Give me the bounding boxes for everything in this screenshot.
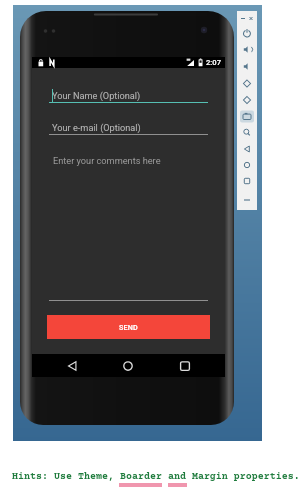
button[interactable]: Your e-mail (Optional)	[49, 120, 208, 136]
button[interactable]: Your Name (Optional)	[49, 88, 208, 104]
button[interactable]: SEND	[47, 315, 210, 339]
staticText: 2:07	[206, 58, 221, 67]
staticText: Hints: Use Theme, Boarder and Margin pro…	[12, 471, 300, 482]
staticText: Enter your comments here	[53, 155, 161, 166]
staticText: Your e-mail (Optional)	[52, 122, 141, 133]
staticText: SEND	[119, 323, 139, 331]
button[interactable]: Enter your comments here	[49, 153, 208, 301]
button[interactable]: Emulator controls	[237, 11, 257, 210]
button[interactable]: Recents	[175, 356, 195, 375]
staticText: Your Name (Optional)	[52, 90, 141, 101]
button[interactable]: Home	[118, 356, 138, 375]
button[interactable]: Back	[62, 356, 82, 375]
